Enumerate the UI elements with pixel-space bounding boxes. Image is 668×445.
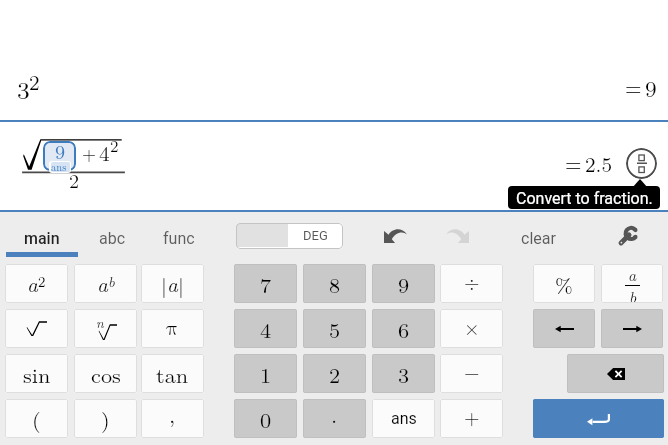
button[interactable] bbox=[5, 309, 68, 348]
staticText: + bbox=[464, 409, 480, 429]
staticText: 7 bbox=[260, 269, 272, 299]
staticText: DEG bbox=[303, 228, 328, 243]
button[interactable]: 8 bbox=[303, 264, 366, 303]
staticText: 6 bbox=[398, 314, 410, 344]
button[interactable]: DEG bbox=[236, 223, 343, 249]
button[interactable]: func bbox=[150, 224, 207, 252]
staticText: sin bbox=[23, 359, 51, 389]
button[interactable]: sin bbox=[5, 354, 68, 393]
staticText: 2.5 bbox=[585, 149, 613, 177]
button[interactable]: a bbox=[5, 264, 68, 303]
button[interactable]: Enter bbox=[533, 399, 664, 438]
staticText: Convert to fraction. bbox=[516, 189, 653, 208]
button[interactable]: 0 bbox=[234, 399, 297, 438]
button[interactable]: ÷ bbox=[440, 264, 503, 303]
button[interactable]: cos bbox=[74, 354, 137, 393]
button[interactable]: + bbox=[440, 399, 503, 438]
staticText: | bbox=[178, 270, 184, 298]
staticText: 2 bbox=[38, 271, 46, 291]
button[interactable]: Redo bbox=[435, 219, 479, 249]
staticText: 3 bbox=[17, 72, 30, 106]
button[interactable]: 1 bbox=[234, 354, 297, 393]
staticText: ans bbox=[51, 160, 67, 174]
staticText: main bbox=[24, 229, 60, 248]
staticText: 0 bbox=[260, 404, 272, 434]
button[interactable]: % bbox=[533, 264, 595, 303]
button[interactable]: × bbox=[440, 309, 503, 348]
button[interactable]: π bbox=[141, 309, 204, 348]
button[interactable]: 7 bbox=[234, 264, 297, 303]
button[interactable]: Settings bbox=[618, 227, 637, 246]
staticText: π bbox=[166, 318, 179, 339]
button[interactable]: ) bbox=[74, 399, 137, 438]
button[interactable]: n bbox=[74, 309, 137, 348]
staticText: n bbox=[96, 313, 104, 331]
staticText: % bbox=[555, 270, 573, 298]
button[interactable]: ( bbox=[5, 399, 68, 438]
staticText: + bbox=[82, 141, 97, 165]
button[interactable]: abc bbox=[86, 224, 139, 252]
staticText: 9 bbox=[398, 269, 410, 299]
staticText: ( bbox=[32, 404, 41, 434]
staticText: 9 bbox=[55, 138, 66, 165]
staticText: ans bbox=[391, 409, 417, 428]
staticText: a bbox=[628, 264, 637, 285]
button[interactable]: Convert to fraction bbox=[626, 148, 657, 179]
staticText: 2 bbox=[69, 167, 80, 194]
staticText: ) bbox=[101, 404, 110, 434]
staticText: 2 bbox=[29, 67, 40, 95]
button[interactable]: 3 bbox=[372, 354, 435, 393]
staticText: 8 bbox=[329, 269, 341, 299]
button[interactable]: 4 bbox=[234, 309, 297, 348]
button[interactable]: 6 bbox=[372, 309, 435, 348]
button[interactable]: a bbox=[74, 264, 137, 303]
staticText: func bbox=[163, 229, 195, 248]
staticText: b bbox=[629, 286, 637, 303]
button[interactable]: Undo bbox=[373, 219, 417, 249]
staticText: 9 bbox=[645, 72, 657, 103]
staticText: a bbox=[97, 270, 108, 298]
button[interactable]: 2 bbox=[303, 354, 366, 393]
button[interactable]: Move left bbox=[533, 309, 595, 348]
staticText: ÷ bbox=[464, 274, 480, 294]
button[interactable]: , bbox=[141, 399, 204, 438]
staticText: a bbox=[27, 270, 38, 298]
staticText: abc bbox=[99, 229, 126, 248]
staticText: = bbox=[565, 148, 582, 176]
staticText: a bbox=[167, 270, 178, 298]
button[interactable]: − bbox=[440, 354, 503, 393]
staticText: , bbox=[169, 399, 176, 429]
staticText: b bbox=[108, 271, 115, 291]
staticText: 4 bbox=[260, 314, 272, 344]
staticText: | bbox=[161, 270, 167, 298]
button[interactable]: 5 bbox=[303, 309, 366, 348]
button[interactable]: | bbox=[141, 264, 204, 303]
staticText: cos bbox=[91, 359, 121, 389]
button[interactable]: Backspace bbox=[567, 354, 664, 393]
staticText: 2 bbox=[329, 359, 341, 389]
button[interactable]: . bbox=[303, 399, 366, 438]
button[interactable]: 9 bbox=[372, 264, 435, 303]
button[interactable]: a bbox=[601, 264, 663, 303]
staticText: = bbox=[625, 72, 642, 100]
staticText: 2 bbox=[110, 134, 119, 157]
staticText: − bbox=[464, 364, 480, 384]
staticText: × bbox=[464, 319, 480, 339]
staticText: 1 bbox=[260, 359, 272, 389]
button[interactable]: clear bbox=[515, 224, 562, 252]
staticText: 4 bbox=[99, 138, 110, 166]
button[interactable]: Move right bbox=[601, 309, 663, 348]
staticText: 3 bbox=[398, 359, 410, 389]
button[interactable]: main bbox=[6, 224, 78, 252]
staticText: 5 bbox=[329, 314, 341, 344]
staticText: tan bbox=[156, 359, 189, 389]
staticText: clear bbox=[521, 229, 556, 248]
staticText: . bbox=[331, 399, 338, 429]
button[interactable]: ans bbox=[372, 399, 435, 438]
button[interactable]: tan bbox=[141, 354, 204, 393]
